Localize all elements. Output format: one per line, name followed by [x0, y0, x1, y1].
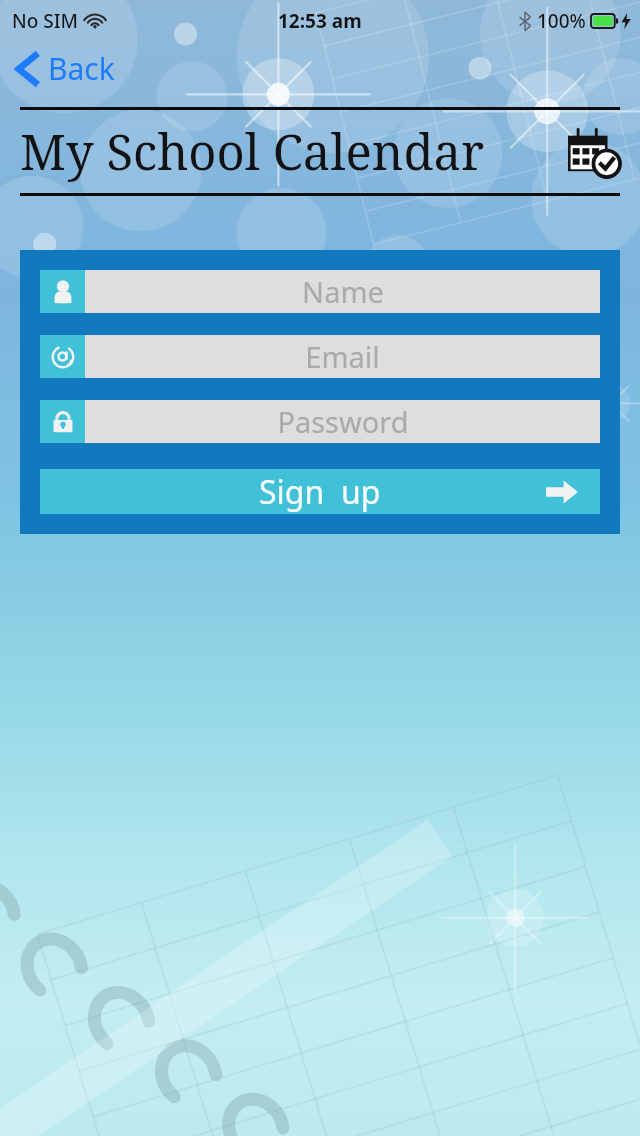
button[interactable]: Email field [40, 335, 600, 378]
staticText: Back [48, 48, 115, 89]
button[interactable]: Back [10, 44, 121, 93]
staticText: Email [305, 337, 380, 376]
staticText: 100% [537, 8, 586, 34]
staticText: No SIM [12, 8, 78, 34]
button[interactable]: Password field [40, 400, 600, 443]
staticText: Password [277, 402, 409, 441]
button[interactable]: Name field [40, 270, 600, 313]
staticText: Sign up [259, 470, 381, 514]
staticText: My School Calendar [20, 118, 568, 185]
staticText: 12:53 am [278, 8, 362, 34]
staticText: Name [302, 272, 384, 311]
button[interactable]: Sign up [40, 469, 600, 514]
